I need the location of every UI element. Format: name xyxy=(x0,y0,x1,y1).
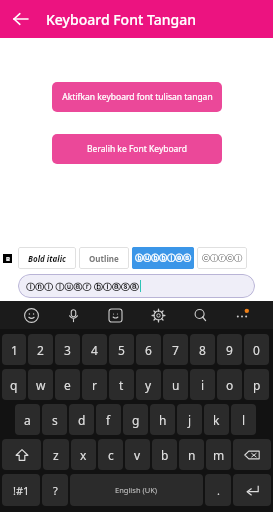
staticText: Outline xyxy=(89,253,119,264)
staticText: d xyxy=(78,412,86,428)
button[interactable]: 3 xyxy=(55,334,80,365)
button[interactable]: v xyxy=(125,439,150,470)
staticText: 9 xyxy=(226,342,233,358)
staticText: !#1 xyxy=(13,483,30,498)
staticText: 3 xyxy=(64,342,71,358)
button[interactable]: 1 xyxy=(2,334,26,365)
button[interactable]: ⓒⓘⓡⓒⓛ xyxy=(197,247,247,269)
staticText: n xyxy=(188,447,196,463)
button[interactable]: Backspace xyxy=(233,439,271,470)
staticText: h xyxy=(159,412,167,428)
button[interactable]: r xyxy=(82,369,107,400)
staticText: 1 xyxy=(11,342,18,358)
staticText: w xyxy=(36,377,46,393)
button[interactable]: Bold italic xyxy=(18,247,76,269)
button[interactable]: w xyxy=(28,369,53,400)
button[interactable]: a xyxy=(15,404,40,435)
button[interactable]: c xyxy=(98,439,123,470)
button[interactable]: g xyxy=(123,404,148,435)
staticText: . xyxy=(217,483,220,498)
button[interactable]: t xyxy=(109,369,134,400)
staticText: j xyxy=(188,412,192,428)
staticText: x xyxy=(80,447,87,463)
button[interactable]: m xyxy=(206,439,231,470)
staticText: e xyxy=(64,377,71,393)
staticText: c xyxy=(108,447,114,463)
staticText: v xyxy=(134,447,141,463)
staticText: i xyxy=(201,377,205,393)
staticText: 4 xyxy=(91,342,98,358)
staticText: Keyboard Font Tangan xyxy=(46,10,196,29)
button[interactable]: 6 xyxy=(136,334,161,365)
button[interactable]: x xyxy=(71,439,96,470)
staticText: p xyxy=(253,377,261,393)
staticText: b xyxy=(161,447,169,463)
staticText: 2 xyxy=(37,342,44,358)
button[interactable]: ⓑⓤⓑⓑⓛⓔⓢ xyxy=(132,247,194,269)
staticText: 8 xyxy=(199,342,206,358)
button[interactable]: h xyxy=(150,404,175,435)
button[interactable]: Outline xyxy=(79,247,129,269)
button[interactable]: 5 xyxy=(109,334,134,365)
staticText: q xyxy=(10,377,18,393)
button[interactable]: English (UK) xyxy=(70,474,203,506)
button[interactable]: Shift xyxy=(2,439,41,470)
staticText: g xyxy=(132,412,140,428)
button[interactable]: Beralih ke Font Keyboard xyxy=(52,134,222,164)
staticText: 0 xyxy=(253,342,260,358)
button[interactable]: Voice input xyxy=(62,304,84,326)
button[interactable]: Enter xyxy=(233,474,271,506)
button[interactable]: Search xyxy=(189,304,211,326)
button[interactable]: k xyxy=(204,404,229,435)
button[interactable]: 2 xyxy=(28,334,53,365)
button[interactable]: y xyxy=(136,369,161,400)
button[interactable]: !#1 xyxy=(2,474,40,506)
staticText: ⓒⓘⓡⓒⓛ xyxy=(202,253,242,263)
staticText: o xyxy=(226,377,234,393)
button[interactable]: Back xyxy=(8,6,34,32)
staticText: Bold italic xyxy=(28,253,66,264)
button[interactable]: 0 xyxy=(244,334,269,365)
button[interactable]: f xyxy=(96,404,121,435)
staticText: Beralih ke Font Keyboard xyxy=(87,143,187,155)
button[interactable]: 8 xyxy=(190,334,215,365)
staticText: a xyxy=(24,412,31,428)
button[interactable]: l xyxy=(231,404,256,435)
button[interactable]: j xyxy=(177,404,202,435)
button[interactable]: 7 xyxy=(163,334,188,365)
button[interactable]: B xyxy=(0,245,14,271)
button[interactable]: Settings xyxy=(147,304,169,326)
staticText: ⓘⓝⓘ ⓛⓤⓐⓡ ⓑⓘⓐⓢⓐ xyxy=(26,280,139,292)
staticText: s xyxy=(52,412,58,428)
button[interactable]: p xyxy=(244,369,269,400)
button[interactable]: q xyxy=(2,369,26,400)
staticText: m xyxy=(213,447,225,463)
button[interactable]: ⓘⓝⓘ ⓛⓤⓐⓡ ⓑⓘⓐⓢⓐ xyxy=(18,274,255,298)
button[interactable]: 4 xyxy=(82,334,107,365)
button[interactable]: s xyxy=(42,404,67,435)
button[interactable]: b xyxy=(152,439,177,470)
button[interactable]: e xyxy=(55,369,80,400)
staticText: 7 xyxy=(172,342,179,358)
staticText: u xyxy=(172,377,180,393)
staticText: 5 xyxy=(118,342,125,358)
staticText: t xyxy=(119,377,124,393)
button[interactable]: d xyxy=(69,404,94,435)
button[interactable]: u xyxy=(163,369,188,400)
staticText: ⓑⓤⓑⓑⓛⓔⓢ xyxy=(135,253,191,263)
button[interactable]: ? xyxy=(42,474,68,506)
button[interactable]: z xyxy=(43,439,69,470)
button[interactable]: Aktifkan keyboard font tulisan tangan xyxy=(52,82,222,112)
button[interactable]: . xyxy=(205,474,231,506)
button[interactable]: i xyxy=(190,369,215,400)
button[interactable]: o xyxy=(217,369,242,400)
button[interactable]: 9 xyxy=(217,334,242,365)
staticText: k xyxy=(213,412,220,428)
button[interactable]: Emoji xyxy=(20,304,42,326)
button[interactable]: Stickers xyxy=(104,304,126,326)
staticText: f xyxy=(106,412,111,428)
staticText: y xyxy=(145,377,152,393)
button[interactable]: n xyxy=(179,439,204,470)
staticText: English (UK) xyxy=(115,485,158,495)
button[interactable]: More options xyxy=(231,304,253,326)
